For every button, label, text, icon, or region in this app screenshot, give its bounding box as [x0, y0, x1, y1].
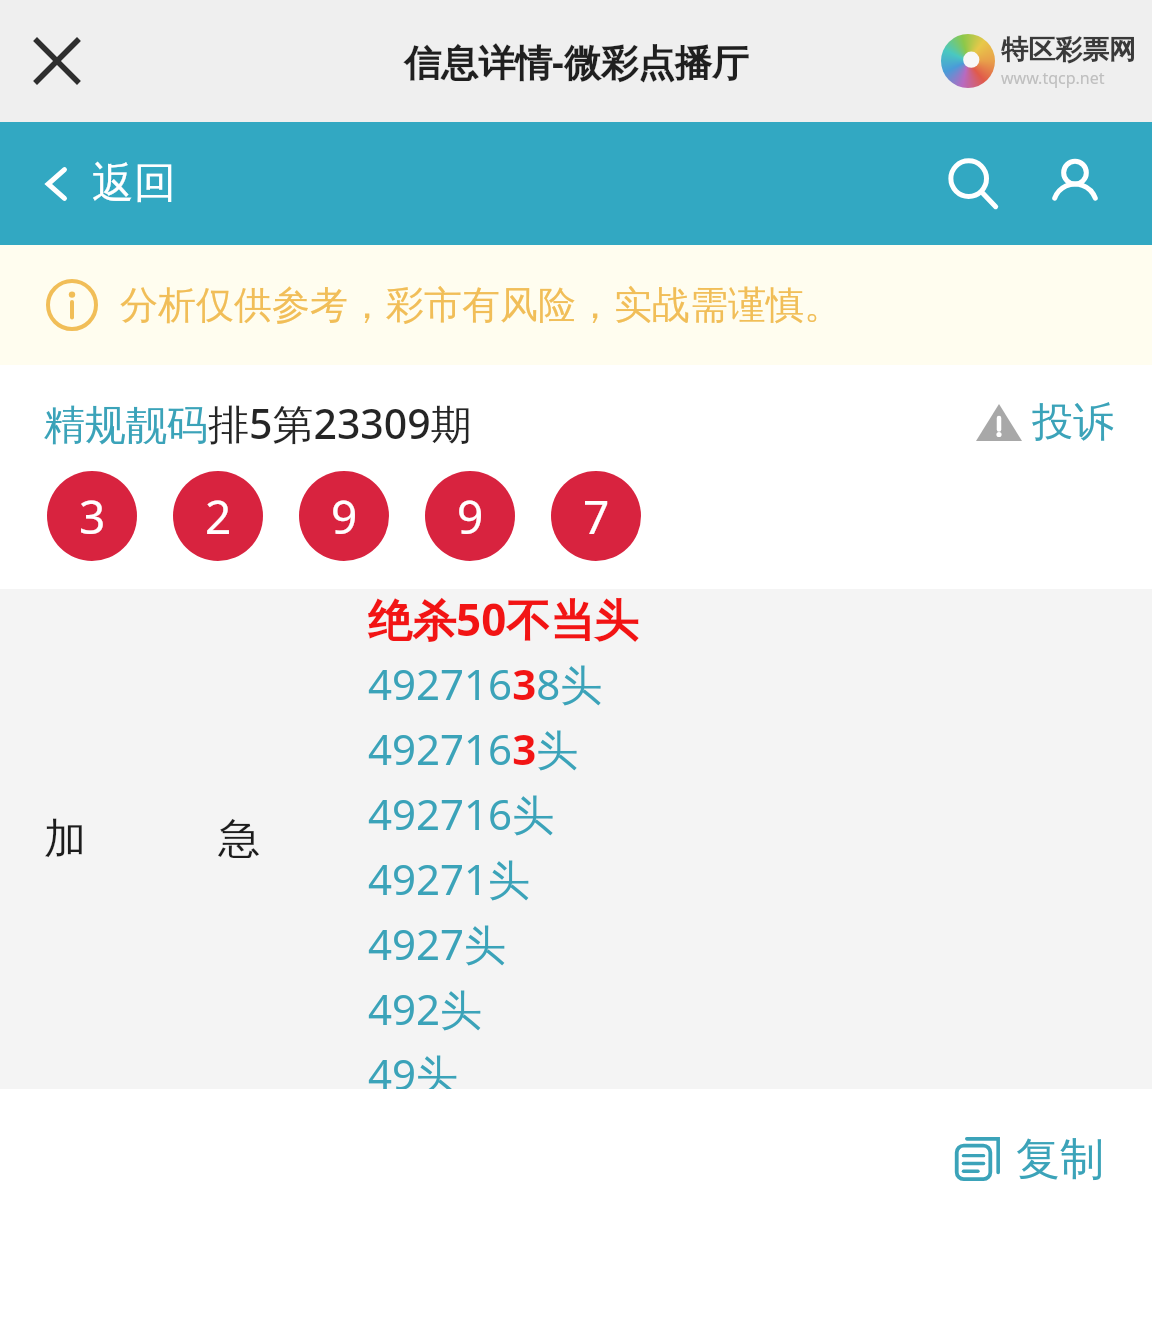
- button[interactable]: Close: [18, 22, 96, 100]
- staticText: 2: [205, 485, 232, 548]
- staticText: 492716头: [368, 785, 555, 842]
- button[interactable]: 复制: [950, 1131, 1104, 1187]
- staticText: 分析仅供参考，彩市有风险，实战需谨慎。: [120, 281, 842, 329]
- staticText: 49271638头: [368, 655, 603, 712]
- button[interactable]: 返回: [40, 157, 176, 210]
- staticText: 3: [79, 485, 106, 548]
- staticText: 7: [583, 485, 610, 548]
- staticText: 投诉: [1032, 397, 1114, 449]
- staticText: 返回: [92, 157, 176, 210]
- button[interactable]: 9: [299, 471, 389, 561]
- button[interactable]: 9: [425, 471, 515, 561]
- staticText: 49头: [368, 1045, 459, 1089]
- staticText: 复制: [1016, 1132, 1104, 1187]
- staticText: 492头: [368, 980, 483, 1037]
- button[interactable]: 7: [551, 471, 641, 561]
- staticText: 加: [44, 813, 86, 866]
- staticText: 49271头: [368, 850, 531, 907]
- button[interactable]: 2: [173, 471, 263, 561]
- button[interactable]: 投诉: [974, 397, 1114, 449]
- staticText: www.tqcp.net: [1001, 67, 1105, 89]
- staticText: 9: [331, 485, 358, 548]
- button[interactable]: 3: [47, 471, 137, 561]
- staticText: 绝杀50不当头: [368, 589, 639, 649]
- button[interactable]: Search: [936, 147, 1010, 221]
- staticText: 9: [457, 485, 484, 548]
- staticText: 4927163头: [368, 720, 579, 777]
- staticText: 信息详情-微彩点播厅: [404, 36, 749, 87]
- button[interactable]: Account: [1038, 147, 1112, 221]
- staticText: 4927头: [368, 915, 507, 972]
- staticText: 特区彩票网: [1001, 33, 1136, 67]
- staticText: 精规靓码排5第23309期: [44, 395, 472, 451]
- staticText: 急: [218, 813, 260, 866]
